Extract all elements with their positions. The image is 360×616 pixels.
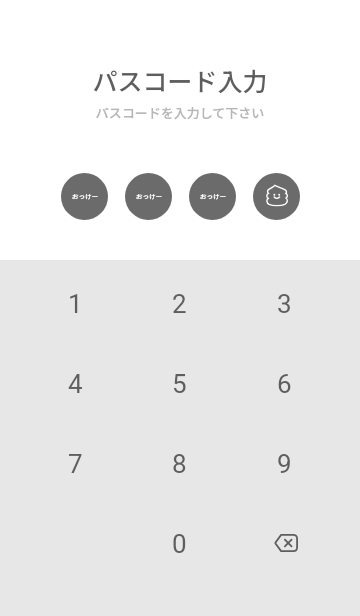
button[interactable]: Delete <box>232 504 337 584</box>
staticText: 6 <box>277 369 292 399</box>
button[interactable]: 3 <box>232 264 337 344</box>
button[interactable]: 6 <box>232 344 337 424</box>
staticText: 2 <box>172 289 187 319</box>
button[interactable]: 9 <box>232 424 337 504</box>
button[interactable]: 5 <box>127 344 232 424</box>
staticText: 7 <box>68 449 83 479</box>
staticText: パスコードを入力して下さい <box>0 103 360 122</box>
button[interactable]: 1 <box>23 264 127 344</box>
staticText: おっけー <box>136 191 162 200</box>
staticText: パスコード入力 <box>0 62 360 98</box>
button[interactable]: 8 <box>127 424 232 504</box>
button[interactable]: 4 <box>23 344 127 424</box>
staticText: 1 <box>68 289 83 319</box>
staticText: おっけー <box>200 191 226 200</box>
staticText: おっけー <box>72 191 98 200</box>
staticText: 5 <box>172 369 187 399</box>
button[interactable]: 7 <box>23 424 127 504</box>
button[interactable]: 0 <box>127 504 232 584</box>
staticText: 9 <box>277 449 292 479</box>
staticText: 8 <box>172 449 187 479</box>
staticText: 0 <box>172 529 187 559</box>
button[interactable]: 2 <box>127 264 232 344</box>
staticText: 3 <box>277 289 292 319</box>
staticText: 4 <box>68 369 83 399</box>
